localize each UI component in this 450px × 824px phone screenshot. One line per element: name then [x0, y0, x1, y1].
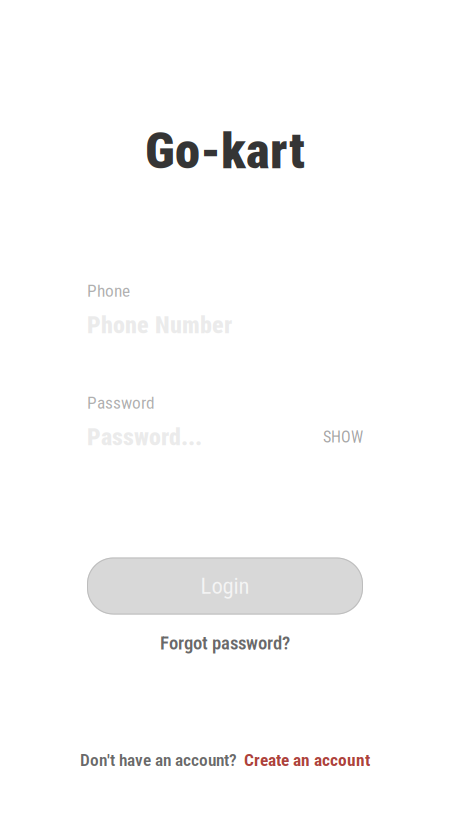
staticText: Forgot password?	[160, 632, 290, 654]
staticText: Phone Number	[87, 311, 232, 339]
button[interactable]: SHOW	[323, 428, 363, 447]
button[interactable]: Create an account	[244, 750, 370, 770]
staticText: Go-kart	[145, 121, 305, 181]
staticText: Password...	[87, 423, 202, 451]
staticText: Login	[200, 573, 249, 599]
staticText: SHOW	[323, 428, 363, 447]
staticText: Phone	[87, 281, 130, 301]
button[interactable]: Forgot password?	[154, 626, 296, 660]
staticText: Don't have an account?	[80, 750, 237, 770]
staticText: Password	[87, 393, 155, 413]
staticText: Create an account	[244, 750, 370, 770]
button[interactable]: Login	[87, 557, 363, 614]
